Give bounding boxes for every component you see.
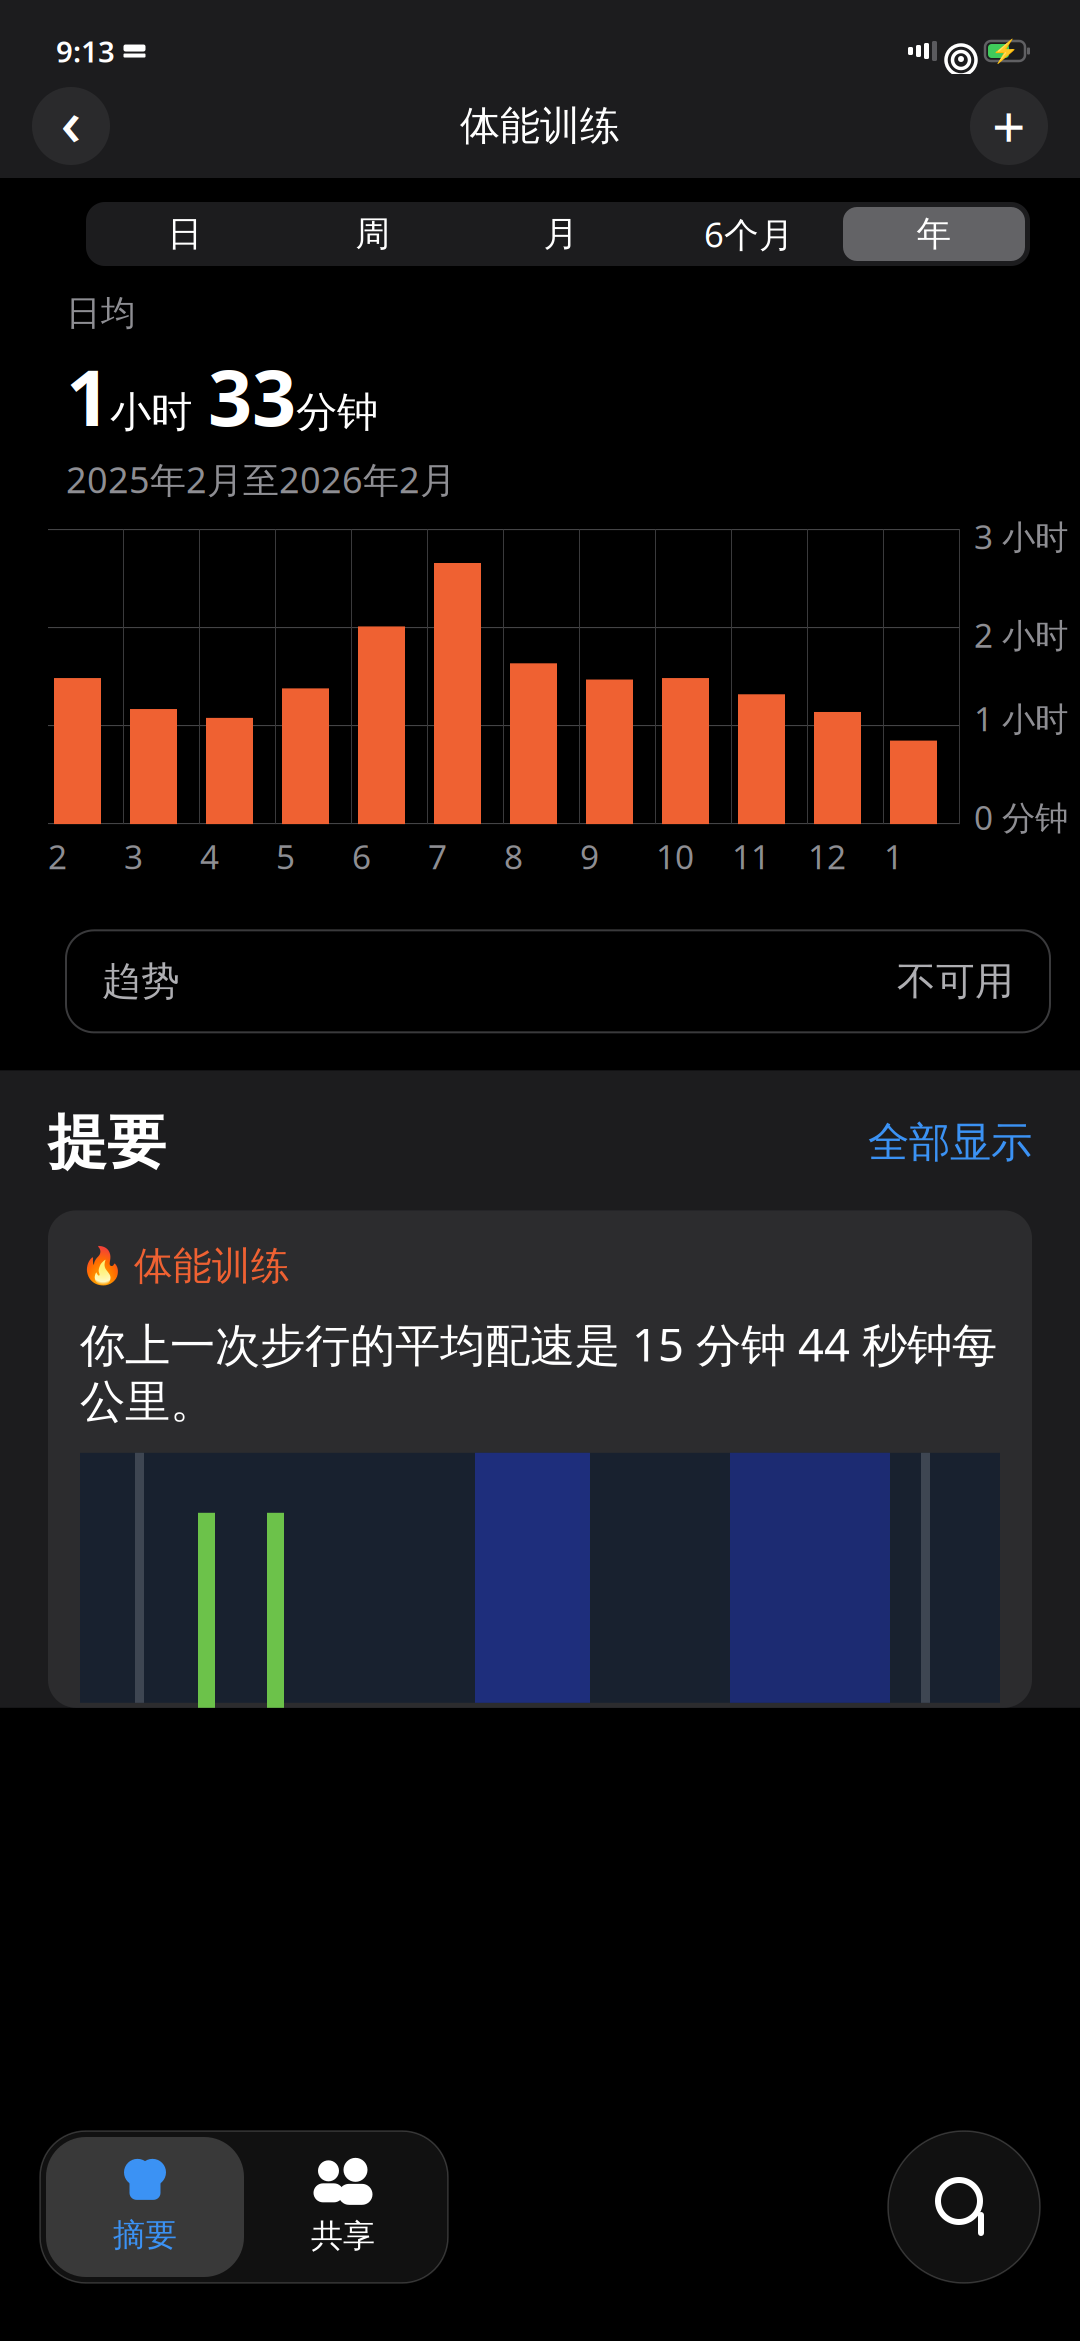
staticText: ⚡ — [991, 38, 1019, 64]
staticText: 摘要 — [113, 2215, 177, 2255]
staticText: 9:13 — [56, 31, 115, 70]
staticText: 1 — [884, 834, 903, 878]
staticText: 体能训练 — [134, 1242, 290, 1290]
staticText: 3 — [124, 834, 143, 878]
button[interactable]: 6个月 — [655, 207, 843, 261]
staticText: 不可用 — [897, 958, 1014, 1005]
staticText: 小时 — [110, 387, 192, 438]
staticText: 12 — [808, 834, 846, 878]
staticText: 分钟 — [296, 387, 378, 438]
staticText: 2 小时 — [974, 613, 1068, 657]
staticText: 月 — [543, 213, 578, 255]
staticText: 6个月 — [704, 211, 794, 257]
staticText: 体能训练 — [460, 101, 620, 150]
staticText: ‹ — [60, 78, 81, 163]
staticText: 日 — [167, 213, 202, 255]
staticText: 2 — [48, 834, 67, 878]
button[interactable]: 搜索 — [888, 2131, 1040, 2283]
staticText: 共享 — [311, 2216, 375, 2256]
staticText: 11 — [732, 834, 770, 878]
staticText: + — [992, 87, 1026, 165]
staticText: 7 — [428, 834, 447, 878]
button[interactable]: 趋势 — [66, 930, 1050, 1032]
staticText: 你上一次步行的平均配速是 15 分钟 44 秒钟每公里。 — [80, 1314, 997, 1430]
staticText: 年 — [916, 213, 951, 255]
button[interactable]: 摘要 — [46, 2137, 244, 2277]
button[interactable]: 共享 — [244, 2137, 442, 2277]
staticText: 0 分钟 — [974, 795, 1068, 839]
staticText: 提要 — [48, 1106, 166, 1178]
staticText: 9 — [580, 834, 599, 878]
button[interactable]: 返回 — [32, 83, 110, 168]
staticText: 周 — [355, 213, 390, 255]
button[interactable]: 年 — [843, 207, 1025, 261]
staticText: 8 — [504, 834, 523, 878]
staticText: 10 — [656, 834, 694, 878]
button[interactable]: 🔥 — [48, 1210, 1032, 1708]
staticText: 🔥 — [80, 1246, 125, 1287]
button[interactable]: 添加数据 — [970, 87, 1048, 165]
staticText: 全部显示 — [868, 1117, 1032, 1168]
staticText: 1 — [66, 345, 110, 447]
button[interactable]: 周 — [279, 207, 467, 261]
staticText: 6 — [352, 834, 371, 878]
button[interactable]: 日 — [91, 207, 279, 261]
button[interactable]: 全部显示 — [868, 1117, 1032, 1168]
staticText: 4 — [200, 834, 219, 878]
staticText: 5 — [276, 834, 295, 878]
staticText: 3 小时 — [974, 514, 1068, 558]
staticText: 日均 — [66, 292, 136, 335]
button[interactable]: 月 — [467, 207, 655, 261]
staticText: 趋势 — [102, 958, 180, 1005]
staticText: 33 — [208, 345, 296, 447]
staticText: 2025年2月至2026年2月 — [66, 455, 456, 503]
staticText: 1 小时 — [974, 696, 1068, 740]
